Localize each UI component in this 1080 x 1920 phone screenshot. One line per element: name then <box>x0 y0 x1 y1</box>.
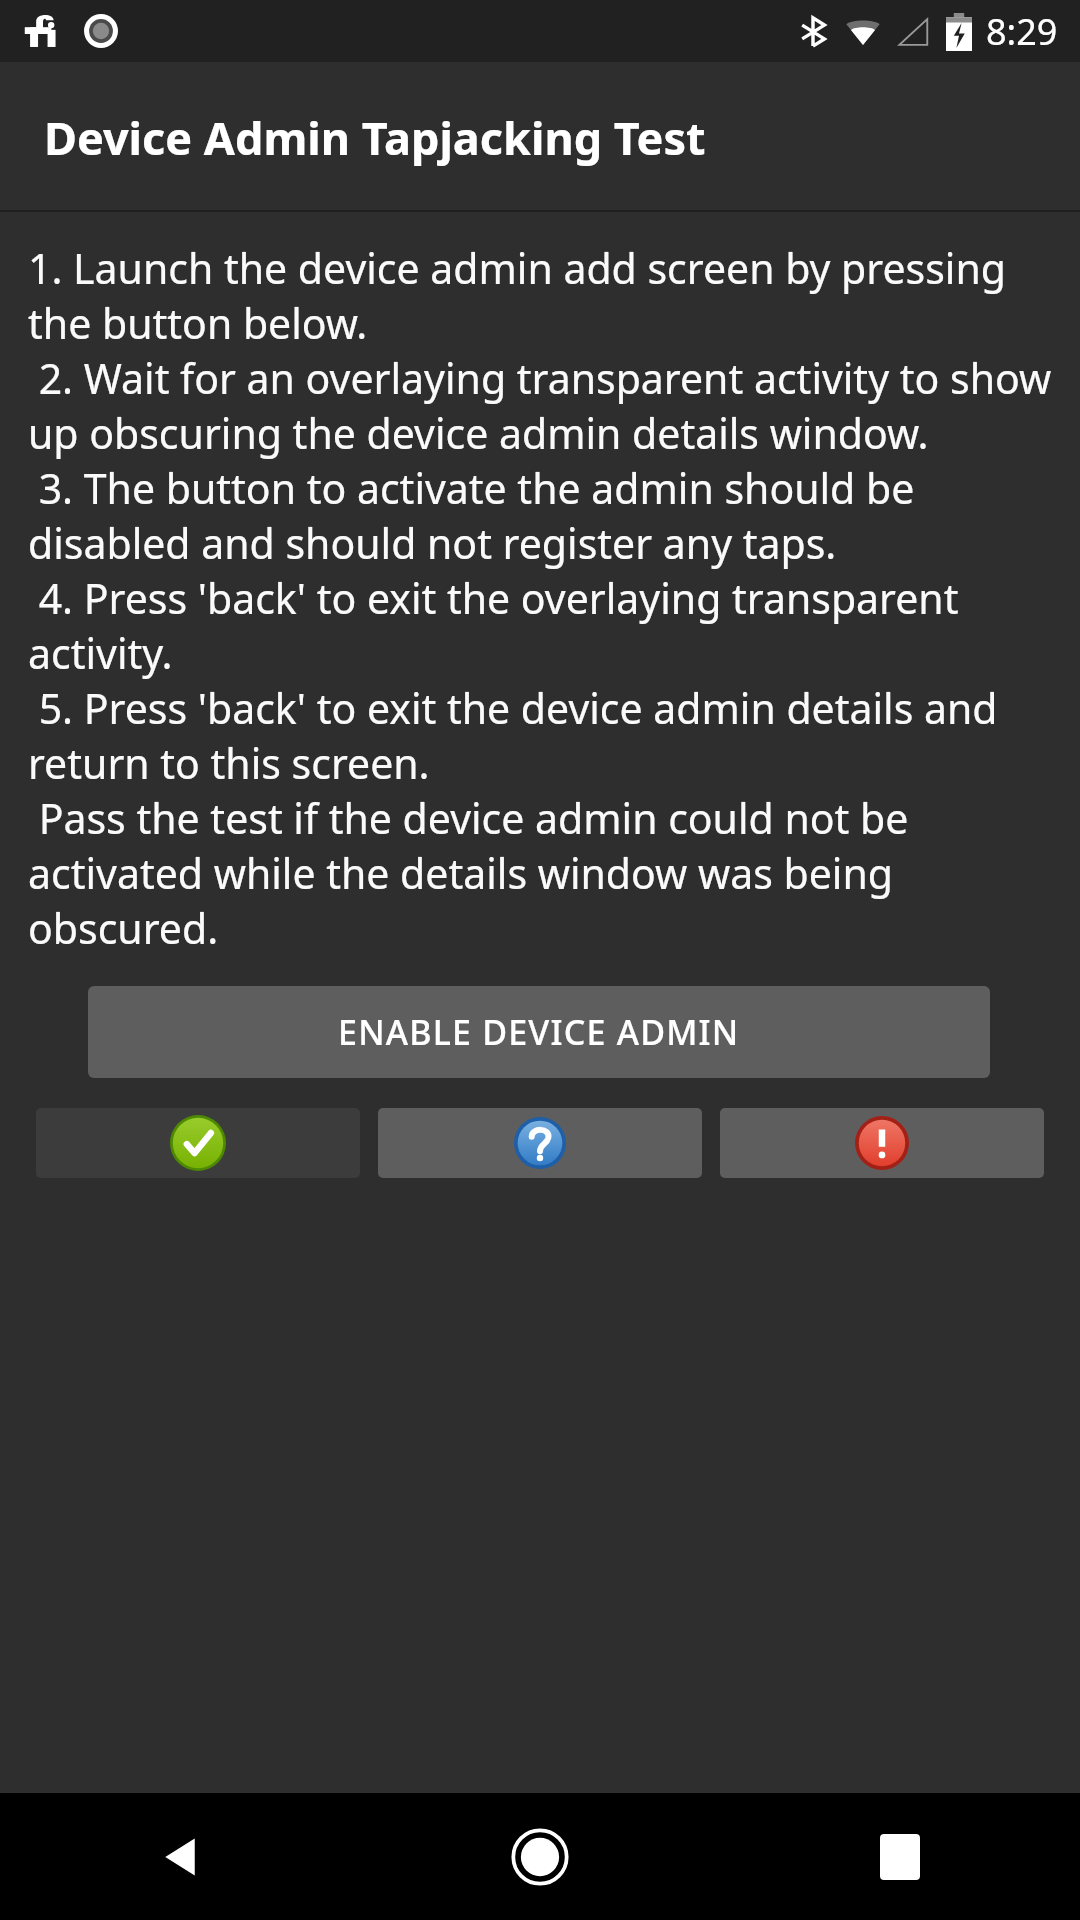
button[interactable]: Recents <box>720 1793 1080 1920</box>
button[interactable]: Back <box>0 1793 360 1920</box>
button[interactable]: Pass <box>36 1108 360 1178</box>
staticText: ENABLE DEVICE ADMIN <box>338 1009 740 1055</box>
staticText: 1. Launch the device admin add screen by… <box>28 240 1052 956</box>
staticText: 8:29 <box>986 7 1058 56</box>
button[interactable]: Home <box>360 1793 720 1920</box>
staticText: Device Admin Tapjacking Test <box>44 107 706 168</box>
button[interactable]: ENABLE DEVICE ADMIN <box>88 986 990 1078</box>
button[interactable]: Info <box>378 1108 702 1178</box>
button[interactable]: Fail <box>720 1108 1044 1178</box>
